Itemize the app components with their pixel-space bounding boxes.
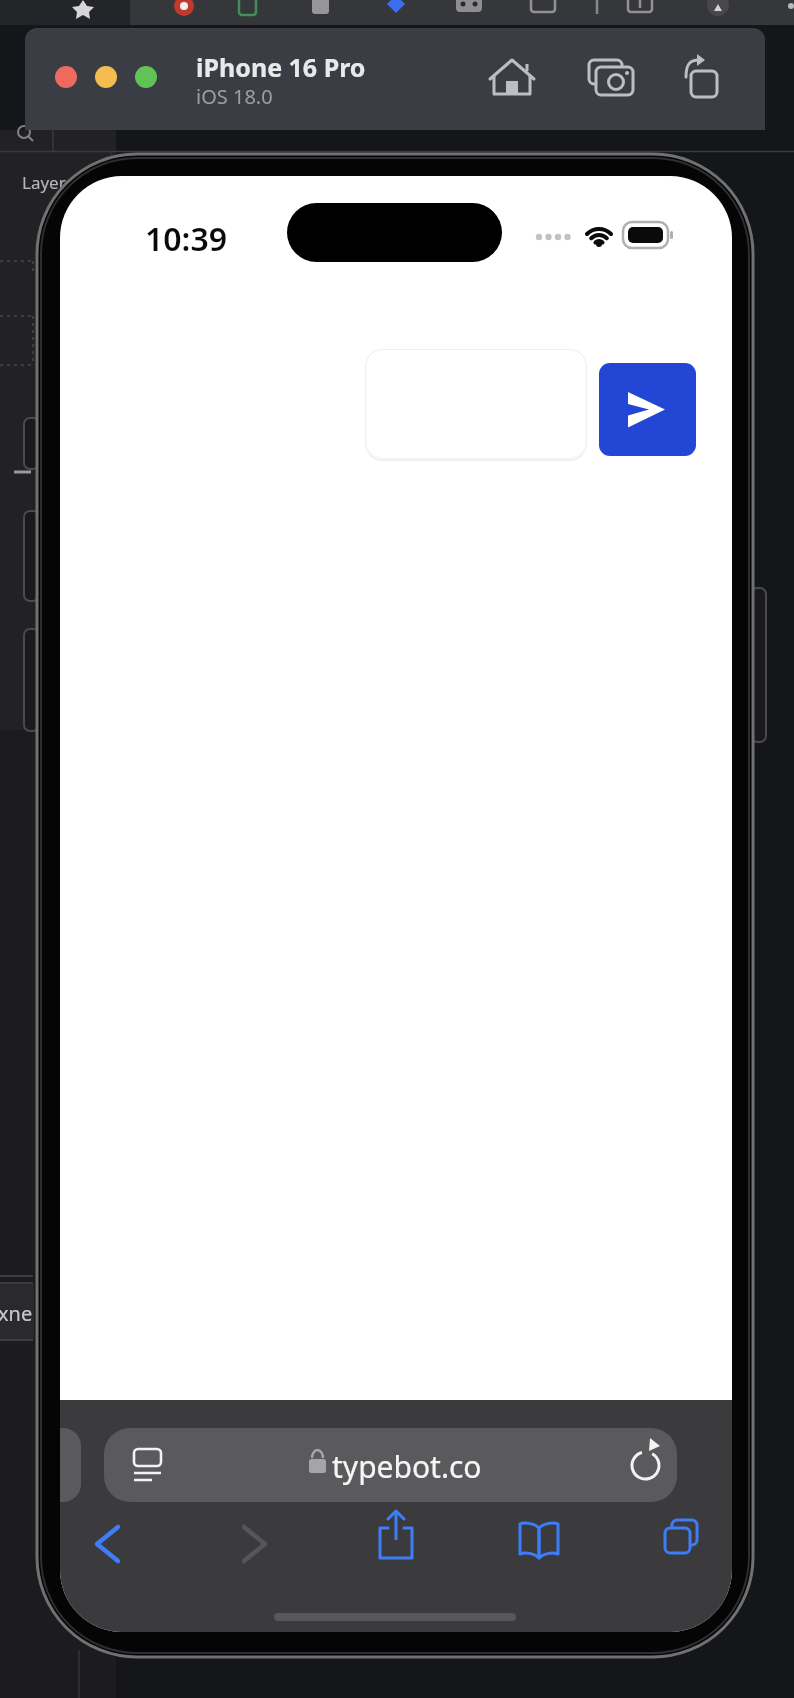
button[interactable] xyxy=(95,66,117,88)
button[interactable] xyxy=(656,1516,708,1566)
button[interactable] xyxy=(370,1506,422,1564)
staticText: iPhone 16 Pro xyxy=(196,50,366,84)
button[interactable] xyxy=(82,1520,132,1570)
staticText: iOS 18.0 xyxy=(196,83,273,110)
button[interactable]: typebot.co xyxy=(104,1428,677,1502)
staticText: typebot.co xyxy=(332,1446,482,1487)
button[interactable] xyxy=(512,1516,566,1566)
staticText: xne xyxy=(0,1300,33,1327)
staticText: 10:39 xyxy=(145,217,228,261)
button[interactable] xyxy=(486,52,536,102)
button[interactable] xyxy=(230,1520,280,1570)
button[interactable] xyxy=(585,52,637,104)
button[interactable] xyxy=(682,52,726,96)
button[interactable] xyxy=(135,66,157,88)
button[interactable] xyxy=(55,66,77,88)
staticText: Layers xyxy=(22,171,74,194)
button[interactable] xyxy=(599,363,696,456)
